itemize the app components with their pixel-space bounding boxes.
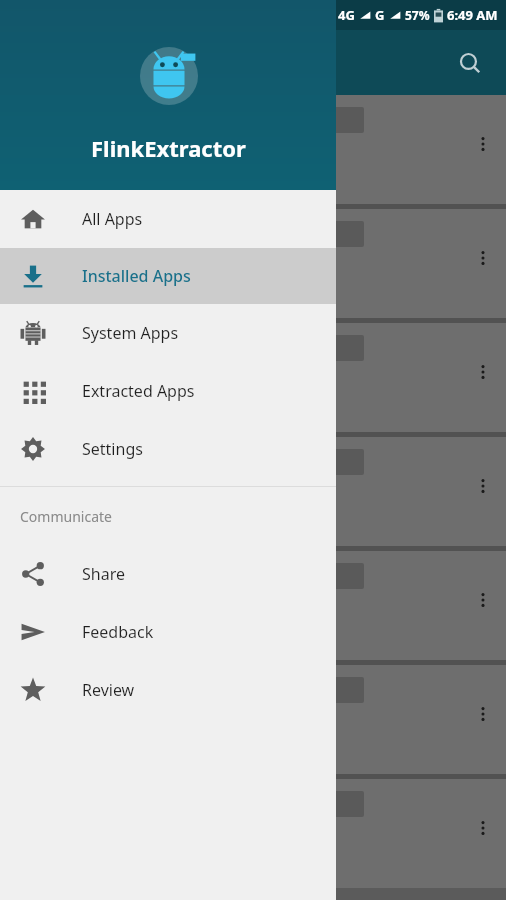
staticText: APP INFO <box>286 797 337 812</box>
button[interactable]: APP INFO <box>0 779 506 888</box>
button[interactable]: APP INFO <box>0 551 506 660</box>
staticText: com.androidvillage.editors.docs <box>6 132 231 152</box>
button[interactable]: APP INFO <box>0 665 506 774</box>
button[interactable]: More options <box>466 811 500 845</box>
button[interactable]: System Apps <box>0 304 336 362</box>
button[interactable]: More options <box>466 469 500 503</box>
staticText: APP INFO <box>286 455 337 470</box>
button[interactable]: APP INFO <box>258 335 364 361</box>
staticText: Share <box>82 563 125 585</box>
button[interactable]: All Apps <box>0 190 336 248</box>
button[interactable]: APP INFO <box>0 323 506 432</box>
staticText: 6:49 AM <box>447 6 498 24</box>
button[interactable]: APP INFO <box>258 449 364 475</box>
staticText: APP INFO <box>286 341 337 356</box>
button[interactable]: APP INFO <box>0 209 506 318</box>
button[interactable]: APP INFO <box>258 791 364 817</box>
staticText: Review <box>82 679 135 701</box>
button[interactable]: Extracted Apps <box>0 362 336 420</box>
button[interactable]: Review <box>0 661 336 719</box>
button[interactable]: Feedback <box>0 603 336 661</box>
staticText: Settings <box>82 438 143 460</box>
button[interactable]: Search <box>448 41 492 85</box>
button[interactable]: More options <box>466 127 500 161</box>
button[interactable]: More options <box>466 241 500 275</box>
staticText: APP INFO <box>286 227 337 242</box>
staticText: Communicate <box>20 507 112 526</box>
button[interactable]: APP INFO <box>258 677 364 703</box>
button[interactable]: Settings <box>0 420 336 478</box>
button[interactable]: More options <box>466 583 500 617</box>
button[interactable]: APP INFO <box>258 221 364 247</box>
staticText: FlinkExtractor <box>91 133 246 163</box>
staticText: APP INFO <box>286 113 337 128</box>
button[interactable]: APP INFO <box>258 107 364 133</box>
staticText: G <box>375 6 385 24</box>
staticText: All Apps <box>82 208 143 230</box>
button[interactable]: APP INFO <box>0 437 506 546</box>
staticText: Installed Apps <box>82 265 191 287</box>
staticText: APP INFO <box>286 569 337 584</box>
staticText: 57% <box>405 7 430 23</box>
button[interactable]: More options <box>466 697 500 731</box>
staticText: System Apps <box>82 322 179 344</box>
button[interactable]: APP INFO <box>258 563 364 589</box>
staticText: Feedback <box>82 621 154 643</box>
staticText: Extracted Apps <box>82 380 195 402</box>
button[interactable]: More options <box>466 355 500 389</box>
button[interactable]: APP INFO <box>0 95 506 204</box>
staticText: 4G <box>338 6 355 24</box>
button[interactable]: Share <box>0 545 336 603</box>
button[interactable]: Installed Apps <box>0 248 336 304</box>
staticText: APP INFO <box>286 683 337 698</box>
